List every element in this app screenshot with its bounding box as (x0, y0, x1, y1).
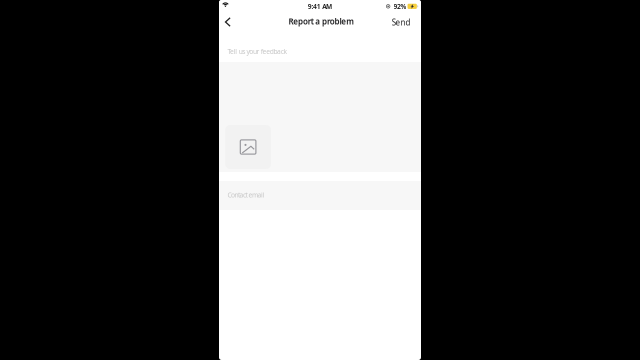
staticText: 9:41 AM (308, 2, 332, 11)
staticText: Send (392, 17, 410, 28)
staticText: Contact email (227, 190, 264, 199)
staticText: 92% (393, 2, 406, 11)
button[interactable]: Attach a photo (225, 125, 271, 169)
staticText: Tell us your feedback (227, 47, 287, 56)
staticText: Report a problem (288, 16, 354, 27)
button[interactable]: Send (388, 13, 414, 32)
button[interactable]: Back (219, 13, 237, 30)
